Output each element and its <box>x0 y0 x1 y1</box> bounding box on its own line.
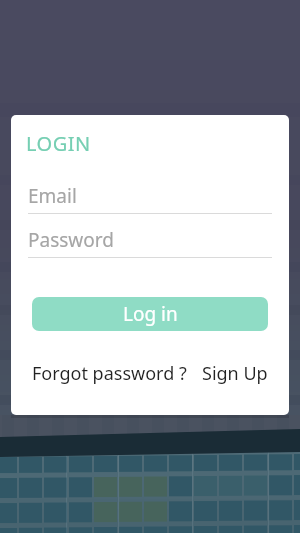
button[interactable]: Email <box>28 175 272 214</box>
button[interactable]: Log in <box>32 297 268 331</box>
staticText: Password <box>28 227 114 253</box>
staticText: Email <box>28 183 77 209</box>
button[interactable]: Password <box>28 219 272 258</box>
button[interactable]: Forgot password ? <box>32 361 187 386</box>
staticText: LOGIN <box>26 130 91 157</box>
button[interactable]: Sign Up <box>202 361 268 386</box>
staticText: Log in <box>123 301 178 327</box>
